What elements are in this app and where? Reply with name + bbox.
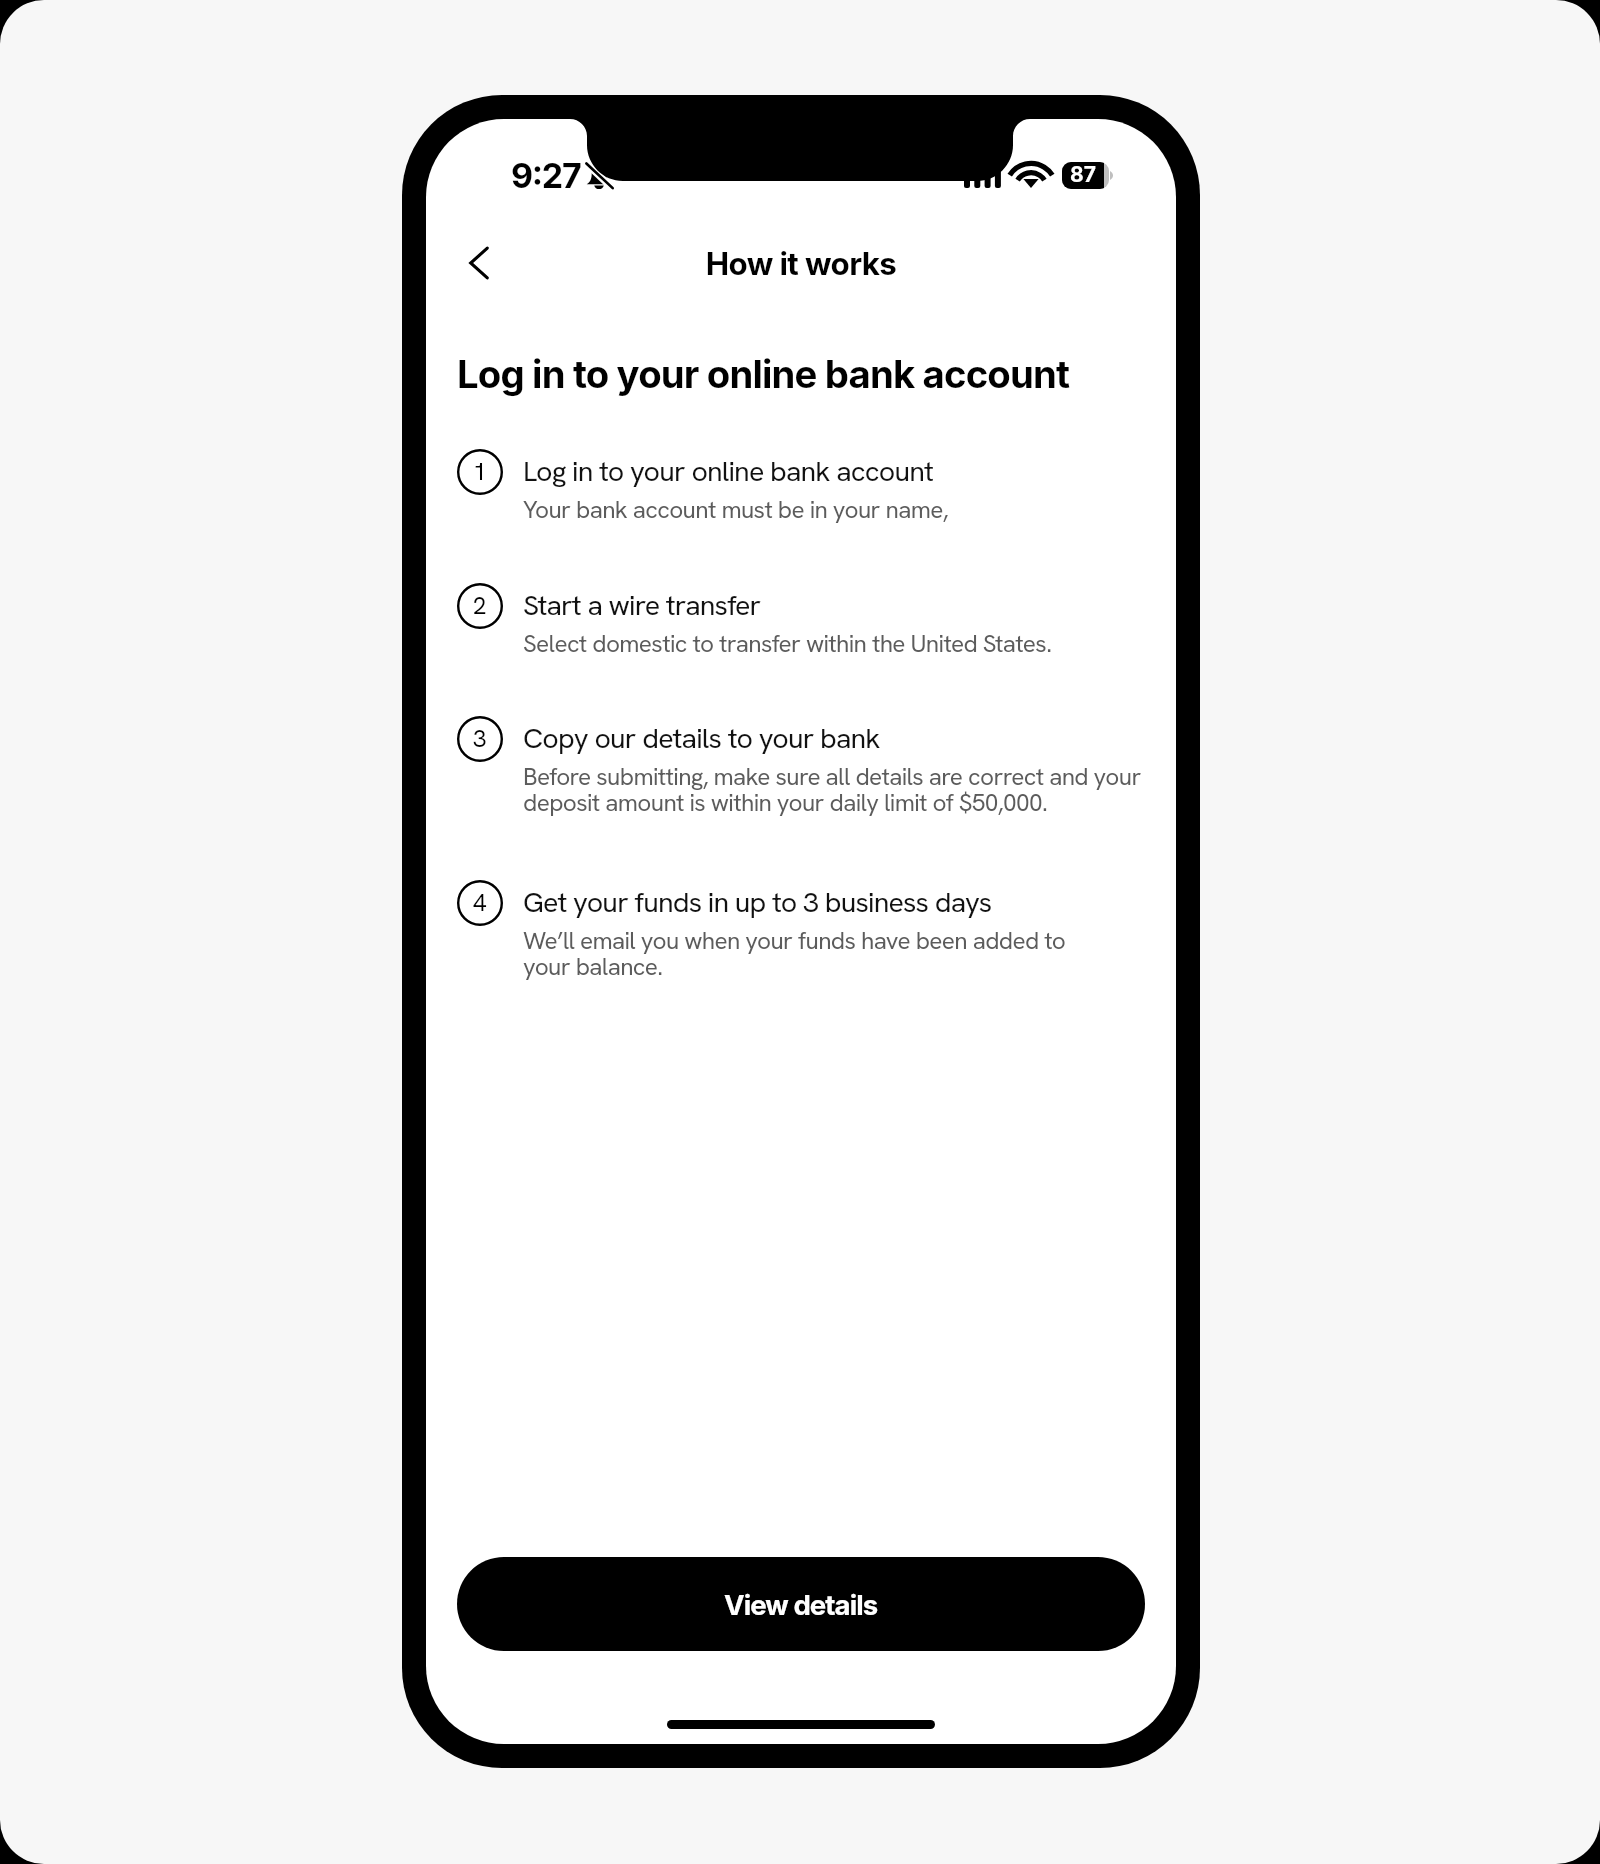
staticText: View details: [724, 1588, 878, 1621]
button[interactable]: View details: [457, 1557, 1145, 1651]
staticText: 4: [473, 887, 487, 918]
staticText: Log in to your online bank account: [523, 452, 933, 489]
button[interactable]: 3: [457, 719, 1166, 818]
staticText: Log in to your online bank account: [457, 351, 1070, 397]
button[interactable]: 1: [457, 452, 1166, 526]
staticText: Start a wire transfer: [523, 586, 761, 623]
staticText: Before submitting, make sure all details…: [523, 761, 1141, 818]
staticText: We’ll email you when your funds have bee…: [523, 925, 1066, 982]
staticText: 3: [473, 723, 487, 754]
button[interactable]: Back: [443, 227, 515, 299]
button[interactable]: 2: [457, 586, 1166, 660]
button[interactable]: 4: [457, 883, 1166, 982]
staticText: Your bank account must be in your name,: [523, 494, 948, 526]
staticText: Copy our details to your bank: [523, 719, 880, 756]
staticText: Get your funds in up to 3 business days: [523, 883, 992, 920]
staticText: 9:27: [511, 155, 581, 196]
staticText: 87: [1070, 162, 1096, 187]
staticText: 2: [473, 590, 487, 621]
staticText: Select domestic to transfer within the U…: [523, 628, 1052, 660]
staticText: How it works: [426, 245, 1176, 283]
staticText: 1: [473, 456, 487, 487]
